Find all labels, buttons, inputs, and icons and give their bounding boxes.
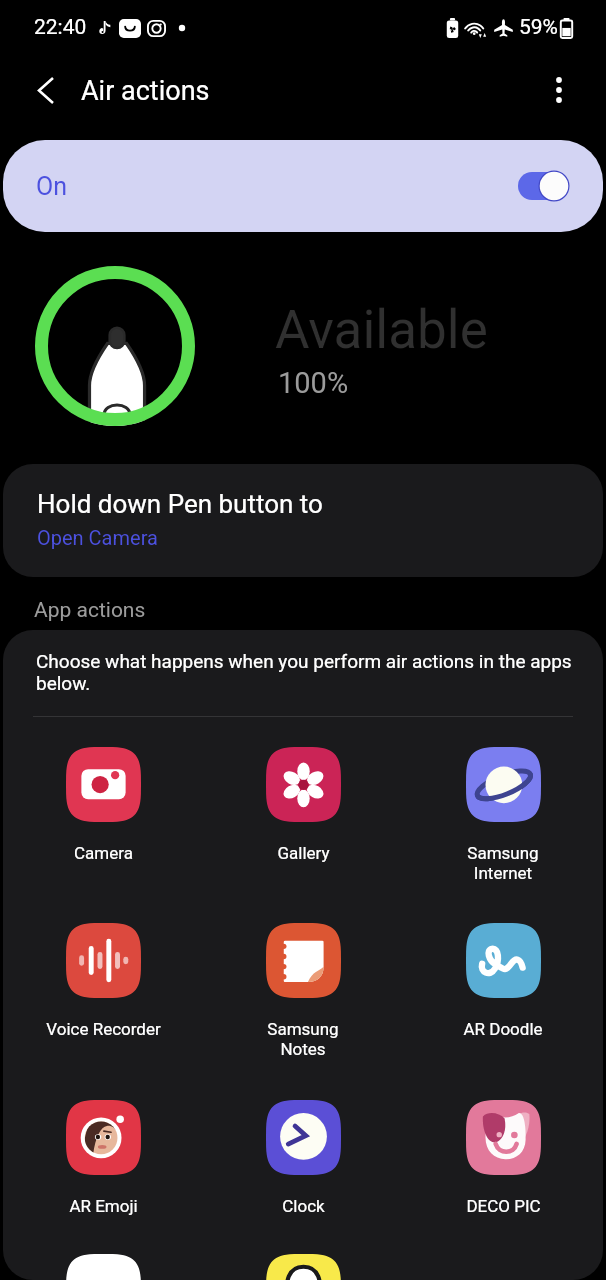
button[interactable]: Hold down Pen button to	[3, 464, 603, 577]
button[interactable]: Navigate up	[18, 62, 74, 118]
staticText: App actions	[34, 598, 146, 623]
staticText: Camera	[74, 843, 133, 863]
button[interactable]: Camera	[3, 747, 203, 863]
staticText: Voice Recorder	[46, 1019, 161, 1039]
button[interactable]: Gallery	[203, 747, 403, 863]
staticText: Hold down Pen button to	[37, 489, 323, 519]
button[interactable]	[203, 1254, 403, 1280]
staticText: 59%	[519, 15, 558, 40]
staticText: Clock	[282, 1196, 325, 1216]
staticText: 100%	[278, 366, 349, 400]
staticText: Air actions	[81, 75, 210, 107]
staticText: Gallery	[277, 843, 330, 863]
staticText: AR Emoji	[69, 1196, 138, 1216]
button[interactable]: DECO PIC	[403, 1100, 603, 1216]
button[interactable]: AR Emoji	[3, 1100, 203, 1216]
button[interactable]: On	[3, 140, 603, 232]
staticText: AR Doodle	[463, 1019, 543, 1039]
button[interactable]: Samsung Notes	[203, 923, 403, 1059]
staticText: Samsung Notes	[267, 1019, 339, 1059]
staticText: Open Camera	[37, 526, 158, 549]
button[interactable]: Voice Recorder	[3, 923, 203, 1039]
staticText: Available	[275, 299, 488, 361]
staticText: Samsung Internet	[467, 843, 539, 883]
staticText: Choose what happens when you perform air…	[36, 650, 586, 694]
staticText: 22:40	[34, 15, 87, 40]
staticText: On	[36, 172, 68, 201]
button[interactable]: Clock	[203, 1100, 403, 1216]
button[interactable]: AR Doodle	[403, 923, 603, 1039]
button[interactable]	[403, 1254, 603, 1280]
button[interactable]: More options	[531, 62, 587, 118]
button[interactable]	[3, 1254, 203, 1280]
button[interactable]: Samsung Internet	[403, 747, 603, 883]
staticText: DECO PIC	[466, 1196, 541, 1216]
